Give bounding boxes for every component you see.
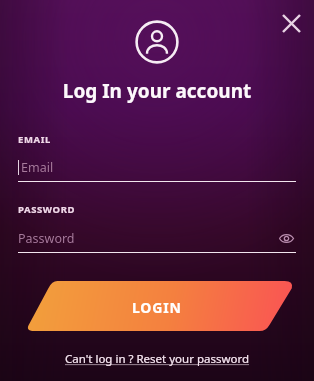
staticText: Password bbox=[18, 230, 276, 247]
staticText: Can't log in ? Reset your password bbox=[65, 351, 250, 367]
button[interactable]: Email bbox=[18, 156, 296, 178]
staticText: Email bbox=[21, 159, 54, 176]
staticText: PASSWORD bbox=[18, 203, 76, 216]
button[interactable]: Can't log in ? Reset your password bbox=[0, 351, 314, 367]
button[interactable]: Close bbox=[274, 6, 308, 40]
button[interactable]: Show password bbox=[276, 228, 296, 248]
staticText: EMAIL bbox=[18, 133, 51, 146]
button[interactable]: LOGIN bbox=[0, 279, 314, 335]
staticText: LOGIN bbox=[132, 298, 182, 317]
button[interactable]: Password bbox=[18, 227, 296, 249]
staticText: Log In your account bbox=[0, 78, 314, 104]
